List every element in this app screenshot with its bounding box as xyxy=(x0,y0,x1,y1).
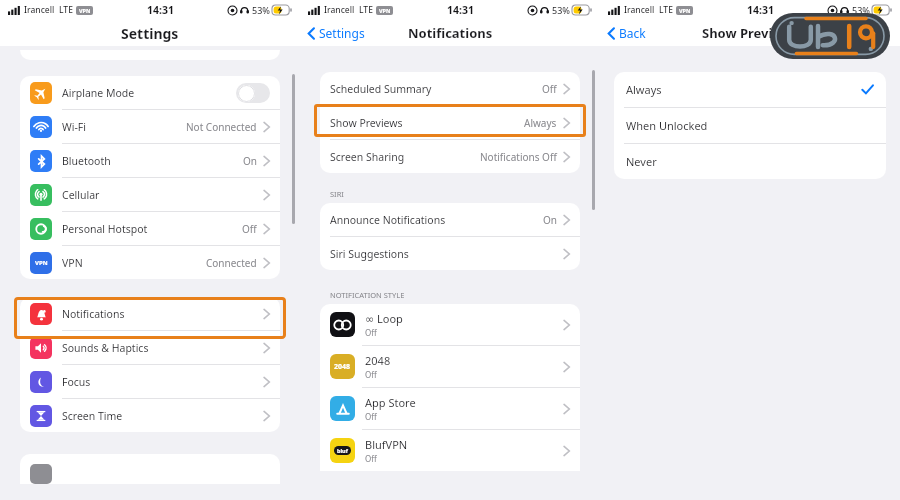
staticText: 2048 xyxy=(365,353,391,368)
button[interactable] xyxy=(236,83,270,103)
staticText: Always xyxy=(524,116,557,130)
staticText: On xyxy=(243,154,257,168)
staticText: BlufVPN xyxy=(365,437,408,452)
button[interactable]: Personal Hotspot xyxy=(20,212,280,245)
button[interactable] xyxy=(14,297,286,339)
button[interactable]: Back xyxy=(608,20,900,46)
button[interactable]: When Unlocked xyxy=(614,108,886,143)
staticText: NOTIFICATION STYLE xyxy=(330,290,405,300)
staticText: Wi-Fi xyxy=(62,120,87,134)
button[interactable]: 2048 xyxy=(320,346,580,387)
button[interactable]: Bluetooth xyxy=(20,144,280,177)
button[interactable]: Show Previews xyxy=(320,106,580,139)
staticText: 14:31 xyxy=(747,3,774,17)
button[interactable]: Wi-Fi xyxy=(20,110,280,143)
staticText: Cellular xyxy=(62,188,100,202)
staticText: Off xyxy=(365,369,377,380)
staticText: When Unlocked xyxy=(626,118,708,133)
staticText: Notifications xyxy=(62,307,125,321)
button[interactable]: Notifications xyxy=(20,297,280,330)
staticText: Show Previews xyxy=(702,24,798,42)
button[interactable]: Always xyxy=(614,72,886,107)
staticText: Off xyxy=(365,453,377,464)
staticText: Announce Notifications xyxy=(330,213,446,227)
button[interactable]: Siri Suggestions xyxy=(320,237,580,270)
staticText: VPN xyxy=(62,256,83,270)
button[interactable]: Settings xyxy=(308,20,600,46)
staticText: Show Previews xyxy=(330,116,403,130)
staticText: 2048 xyxy=(334,362,351,372)
staticText: Off xyxy=(242,222,257,236)
staticText: 14:31 xyxy=(447,3,474,17)
staticText: Notifications Off xyxy=(480,150,557,164)
button[interactable]: Screen Time xyxy=(20,399,280,432)
staticText: Sounds & Haptics xyxy=(62,341,149,355)
staticText: Off xyxy=(365,411,377,422)
staticText: ∞ Loop xyxy=(365,311,403,326)
button[interactable]: Scheduled Summary xyxy=(320,72,580,105)
button[interactable]: Cellular xyxy=(20,178,280,211)
staticText: Scheduled Summary xyxy=(330,82,432,96)
staticText: Settings xyxy=(319,25,365,41)
staticText: bluf xyxy=(337,447,348,454)
button[interactable]: Sounds & Haptics xyxy=(20,331,280,364)
staticText: App Store xyxy=(365,395,416,410)
button[interactable] xyxy=(314,104,586,137)
button[interactable]: Announce Notifications xyxy=(320,203,580,236)
staticText: Airplane Mode xyxy=(62,86,135,100)
staticText: Connected xyxy=(206,256,257,270)
staticText: Siri Suggestions xyxy=(330,247,409,261)
staticText: On xyxy=(543,213,557,227)
button[interactable]: bluf xyxy=(320,430,580,471)
staticText: Screen Time xyxy=(62,409,123,423)
staticText: LTE xyxy=(59,4,73,16)
staticText: LTE xyxy=(659,4,673,16)
staticText: 53% xyxy=(552,4,570,16)
staticText: Personal Hotspot xyxy=(62,222,148,236)
staticText: VPN xyxy=(35,259,48,267)
staticText: Off xyxy=(542,82,557,96)
button[interactable]: Focus xyxy=(20,365,280,398)
button[interactable]: VPN xyxy=(20,246,280,279)
button[interactable]: Screen Sharing xyxy=(320,140,580,173)
staticText: VPN xyxy=(79,7,91,14)
staticText: Focus xyxy=(62,375,91,389)
staticText: LTE xyxy=(359,4,373,16)
staticText: 53% xyxy=(852,4,870,16)
staticText: Back xyxy=(619,25,646,41)
staticText: Always xyxy=(626,82,662,97)
staticText: Not Connected xyxy=(186,120,257,134)
staticText: Notifications xyxy=(408,24,493,42)
staticText: VPN xyxy=(679,7,691,14)
staticText: Bluetooth xyxy=(62,154,111,168)
staticText: Irancell xyxy=(24,4,55,16)
staticText: Screen Sharing xyxy=(330,150,405,164)
staticText: 53% xyxy=(252,4,270,16)
staticText: SIRI xyxy=(330,189,344,199)
button[interactable]: Never xyxy=(614,144,886,179)
staticText: Off xyxy=(365,327,377,338)
button[interactable]: Airplane Mode xyxy=(20,76,280,109)
button[interactable]: App Store xyxy=(320,388,580,429)
staticText: Irancell xyxy=(324,4,355,16)
staticText: Irancell xyxy=(624,4,655,16)
button[interactable]: ∞ Loop xyxy=(320,304,580,345)
staticText: 14:31 xyxy=(147,3,174,17)
staticText: Settings xyxy=(121,24,179,43)
staticText: Never xyxy=(626,154,657,169)
staticText: VPN xyxy=(379,7,391,14)
